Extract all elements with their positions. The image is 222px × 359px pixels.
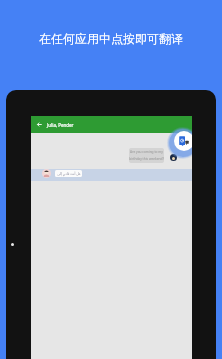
button[interactable]: هل أنت قادم إلى bbox=[55, 170, 82, 177]
button[interactable]: Translate bbox=[167, 127, 192, 159]
button[interactable]: Back bbox=[31, 116, 47, 133]
button[interactable]: Back bbox=[31, 116, 192, 133]
staticText: Julia, Pender bbox=[47, 122, 74, 128]
staticText: هل أنت قادم إلى bbox=[57, 171, 81, 176]
button[interactable] bbox=[31, 169, 192, 181]
button[interactable]: Are you coming to my birthday this weeke… bbox=[129, 148, 164, 163]
staticText: 在任何应用中点按即可翻译 bbox=[0, 31, 222, 46]
staticText: Are you coming to my birthday this weeke… bbox=[129, 150, 164, 161]
